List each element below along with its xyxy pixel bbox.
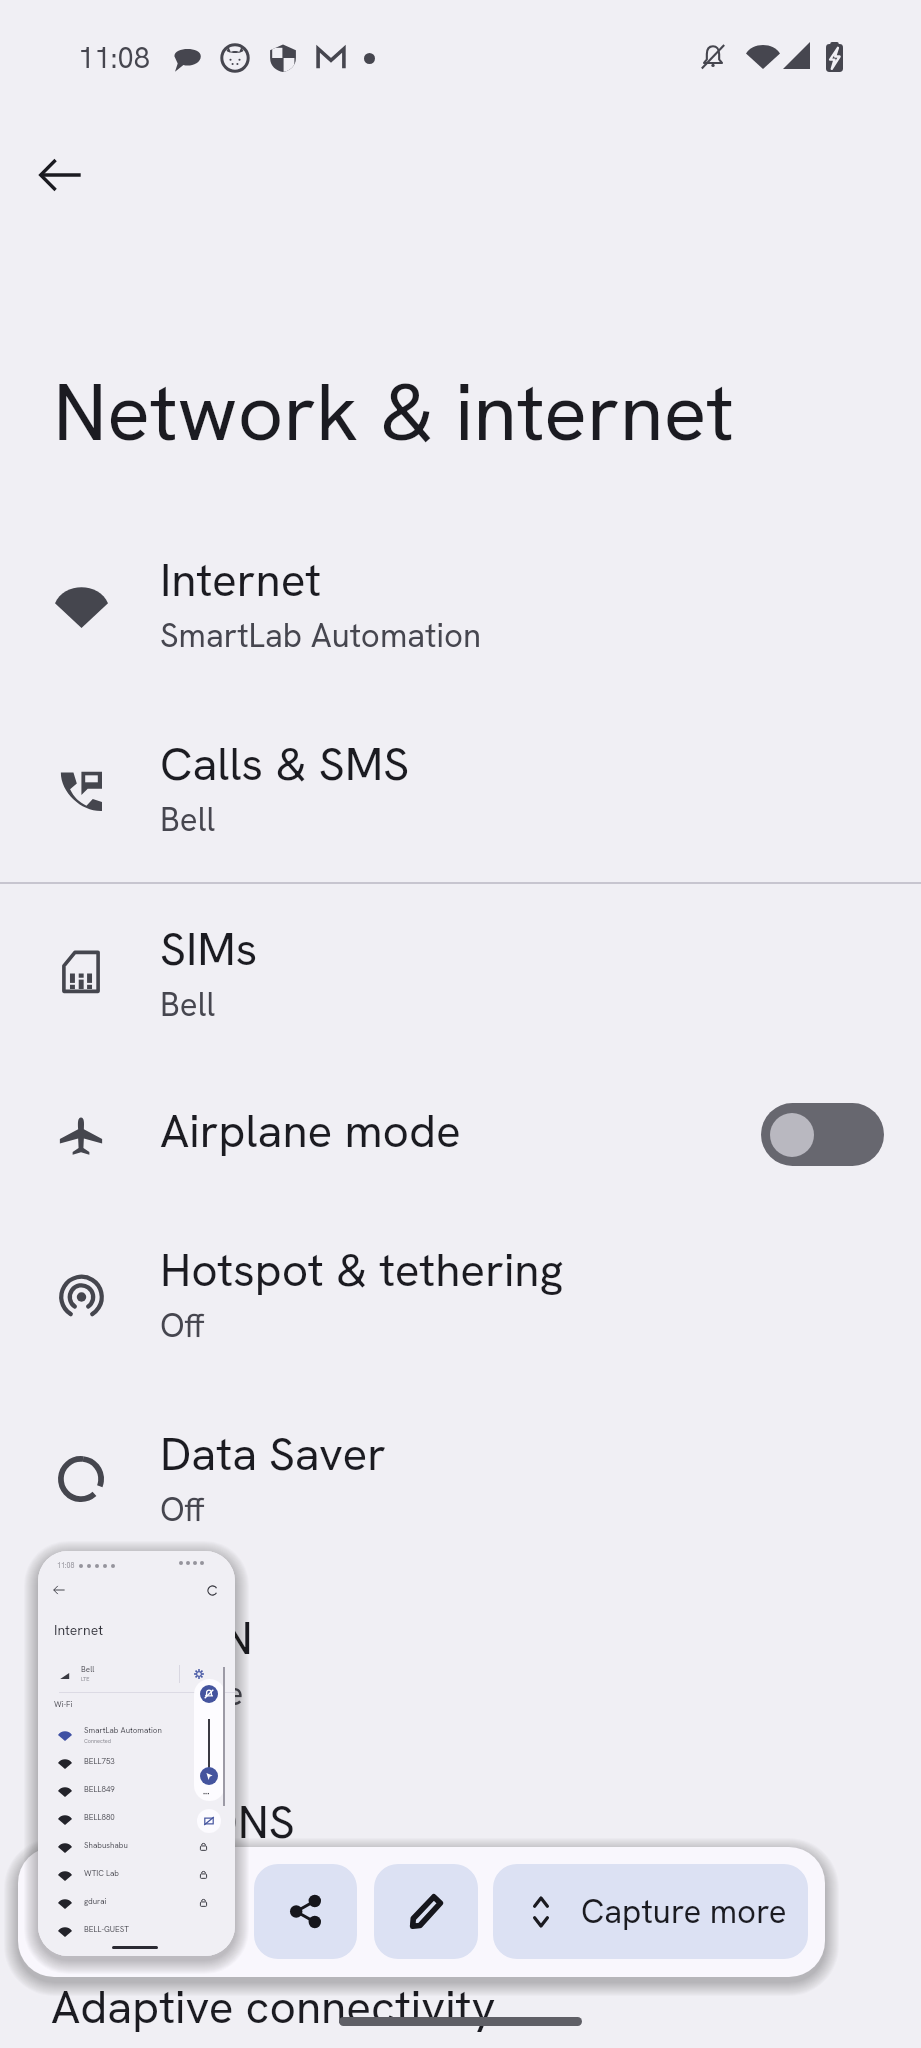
button[interactable]: Airplane mode — [0, 1047, 921, 1223]
staticText: SIMs — [160, 919, 258, 979]
button[interactable]: Hotspot & tethering — [0, 1209, 921, 1385]
button[interactable]: Calls & SMS — [0, 702, 921, 878]
staticText: Calls & SMS — [160, 734, 410, 794]
button[interactable]: Capture more — [493, 1864, 808, 1959]
staticText: Connected — [84, 1737, 111, 1744]
button[interactable]: Adaptive connectivity — [0, 1922, 921, 2048]
staticText: Internet — [54, 1621, 104, 1639]
staticText: Internet — [160, 550, 322, 610]
staticText: Automatic — [51, 1856, 202, 1899]
button[interactable]: Private DNS — [0, 1760, 921, 1936]
staticText: WTIC Lab — [84, 1868, 120, 1878]
staticText: LTE — [81, 1675, 90, 1682]
staticText: ••• — [203, 1789, 210, 1797]
button[interactable]: Internet — [0, 517, 921, 693]
button[interactable]: Data Saver — [0, 1391, 921, 1567]
staticText: Off — [160, 1304, 205, 1347]
staticText: gdurai — [84, 1896, 107, 1906]
staticText: Bell — [160, 798, 216, 841]
staticText: Capture more — [581, 1890, 787, 1933]
staticText: Data Saver — [160, 1424, 386, 1484]
staticText: VPN — [166, 1608, 253, 1668]
staticText: BELL-GUEST — [84, 1924, 129, 1934]
staticText: BELL880 — [84, 1812, 115, 1822]
staticText: BELL849 — [84, 1784, 115, 1794]
button[interactable]: Screenshot preview — [38, 1551, 235, 1956]
button[interactable]: Airplane mode toggle — [761, 1103, 884, 1166]
button[interactable]: VPN — [0, 1575, 921, 1751]
staticText: Adaptive connectivity — [51, 1977, 496, 2037]
staticText: SmartLab Automation — [160, 614, 482, 657]
staticText: Hotspot & tethering — [160, 1240, 564, 1300]
staticText: None — [166, 1672, 244, 1715]
staticText: Bell — [160, 983, 216, 1026]
staticText: 11:08 — [78, 39, 150, 77]
staticText: Shabushabu — [84, 1840, 128, 1850]
staticText: 11:08 — [57, 1561, 75, 1570]
staticText: Wi-Fi — [54, 1699, 73, 1709]
staticText: Private DNS — [51, 1792, 295, 1852]
staticText: Airplane mode — [160, 1101, 461, 1161]
staticText: SmartLab Automation — [84, 1725, 162, 1735]
staticText: Bell — [81, 1664, 95, 1674]
button[interactable]: Back — [24, 139, 96, 211]
button[interactable]: Edit — [374, 1864, 478, 1959]
staticText: Off — [160, 1488, 205, 1531]
staticText: BELL753 — [84, 1756, 115, 1766]
button[interactable]: SIMs — [0, 885, 921, 1061]
button[interactable]: Share — [254, 1864, 357, 1959]
staticText: Network & internet — [53, 360, 734, 464]
